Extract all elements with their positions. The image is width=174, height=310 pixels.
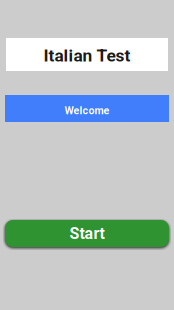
staticText: Italian Test bbox=[43, 45, 130, 66]
staticText: Start bbox=[69, 224, 104, 243]
staticText: Welcome bbox=[64, 104, 109, 117]
button[interactable]: Start bbox=[5, 220, 169, 247]
